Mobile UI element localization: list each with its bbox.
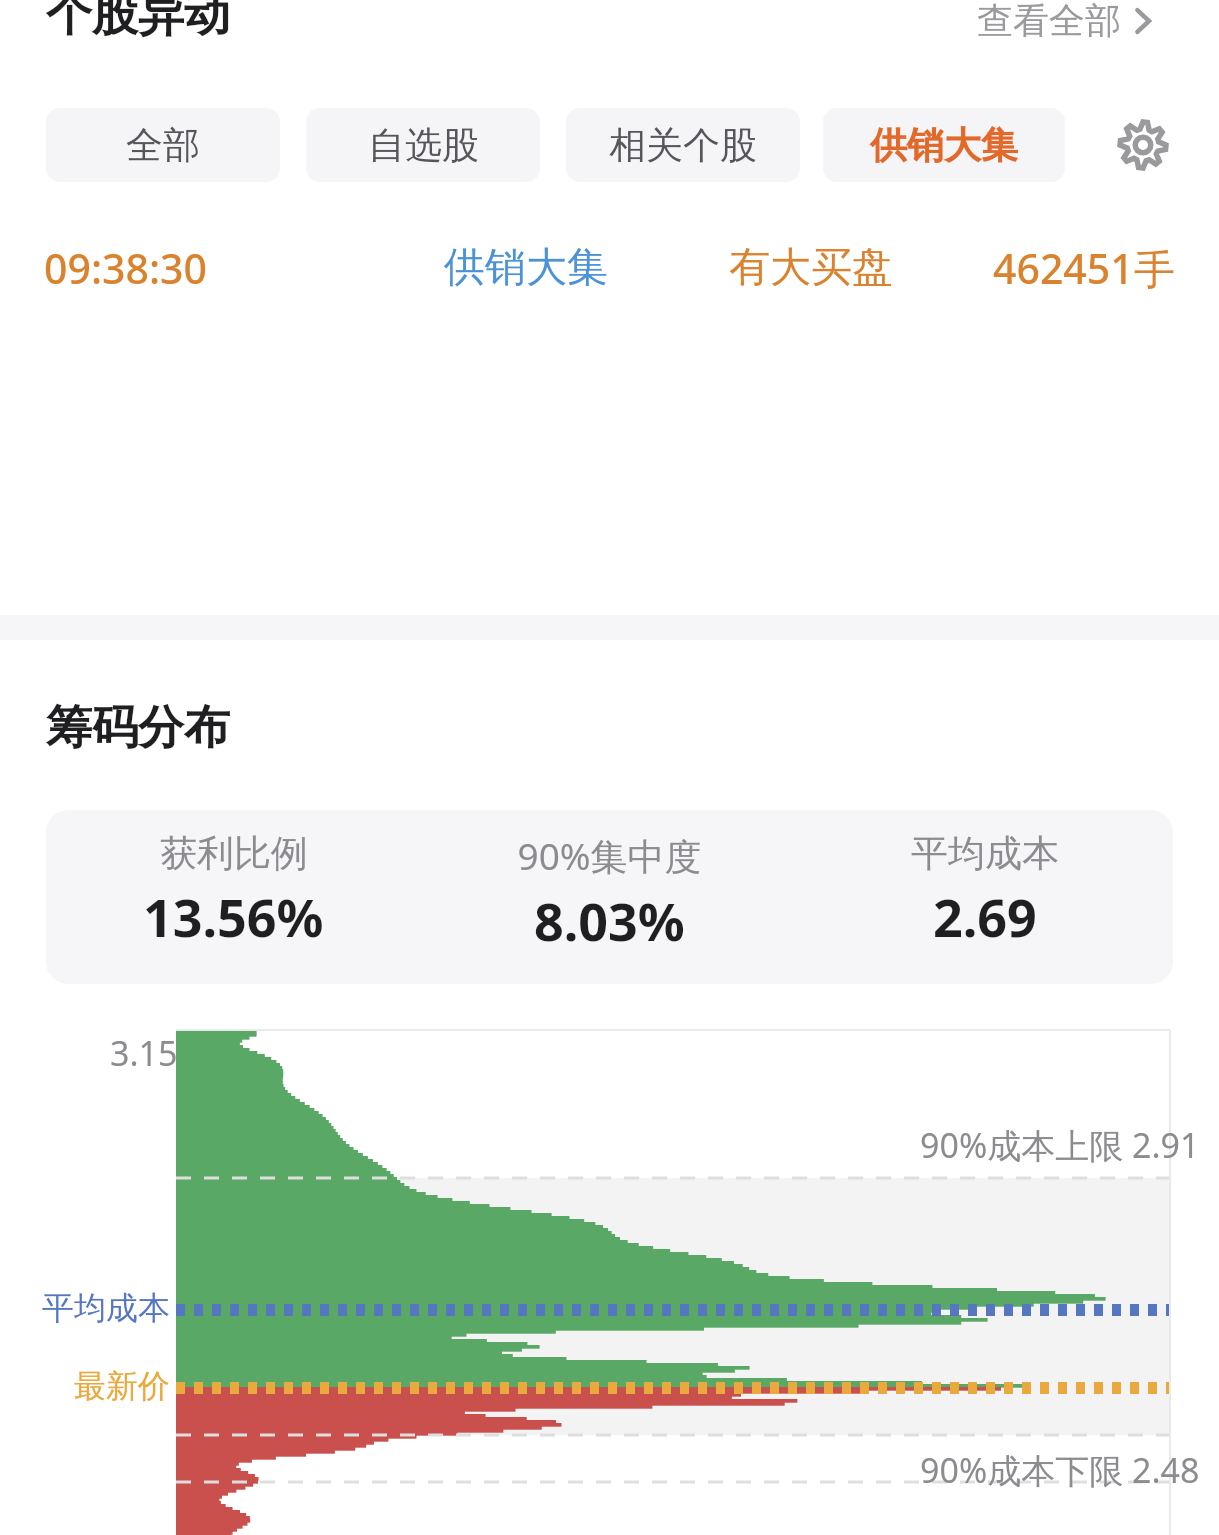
staticText: 全部	[126, 122, 200, 169]
staticText: 3.15	[110, 1030, 178, 1076]
staticText: 8.03%	[534, 885, 685, 956]
button[interactable]: 供销大集	[823, 108, 1065, 182]
staticText: 供销大集	[870, 122, 1018, 169]
staticText: 供销大集	[444, 242, 608, 294]
staticText: 2.69	[933, 881, 1037, 952]
staticText: 获利比例	[160, 830, 308, 877]
button[interactable]: 自选股	[306, 108, 540, 182]
button[interactable]: 获利比例	[46, 810, 1173, 984]
button[interactable]: 查看全部	[967, 0, 1163, 51]
button[interactable]: 全部	[46, 108, 280, 182]
staticText: 13.56%	[143, 881, 324, 952]
staticText: 平均成本	[42, 1288, 170, 1328]
staticText: 90%集中度	[517, 830, 702, 881]
button[interactable]: 相关个股	[566, 108, 800, 182]
staticText: 90%成本下限 2.48	[920, 1447, 1200, 1493]
staticText: 相关个股	[609, 122, 757, 169]
staticText: 462451手	[993, 240, 1175, 296]
button[interactable]: Settings	[1108, 110, 1178, 180]
staticText: 筹码分布	[46, 699, 230, 757]
staticText: 最新价	[74, 1366, 170, 1406]
staticText: 09:38:30	[44, 240, 208, 296]
staticText: 自选股	[368, 122, 479, 169]
staticText: 查看全部	[977, 0, 1121, 43]
button[interactable]: 09:38:30	[0, 240, 1219, 296]
staticText: 有大买盘	[729, 242, 893, 294]
staticText: 个股异动	[46, 0, 230, 44]
staticText: 90%成本上限 2.91	[920, 1122, 1200, 1168]
staticText: 平均成本	[911, 830, 1059, 877]
